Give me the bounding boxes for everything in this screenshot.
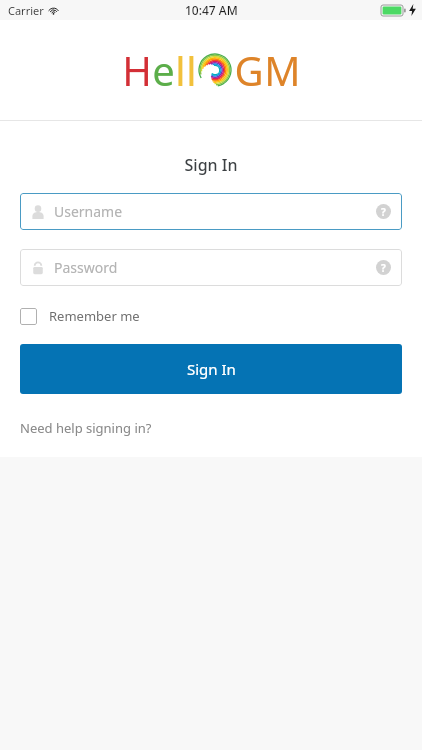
staticText: Remember me [49,307,140,325]
staticText: Sign In [0,154,422,176]
staticText: 10:47 AM [185,2,238,18]
staticText: Carrier [8,3,44,18]
staticText: l [175,43,186,97]
staticText: Need help signing in? [20,419,152,437]
staticText: Sign In [187,359,236,379]
staticText: l [186,43,197,97]
button[interactable]: Username [20,193,402,230]
button[interactable]: Help [376,260,391,275]
button[interactable]: Help [376,204,391,219]
button[interactable]: Need help signing in? [20,417,152,439]
staticText: ? [381,205,386,219]
staticText: Password [54,258,118,277]
staticText: M [264,43,301,97]
staticText: e [152,43,175,97]
staticText: G [234,43,264,97]
button[interactable]: Sign In [20,344,402,394]
button[interactable]: Remember me [20,305,140,327]
staticText: ? [381,261,386,275]
button[interactable]: Password [20,249,402,286]
staticText: H [122,43,152,97]
staticText: Username [54,202,123,221]
